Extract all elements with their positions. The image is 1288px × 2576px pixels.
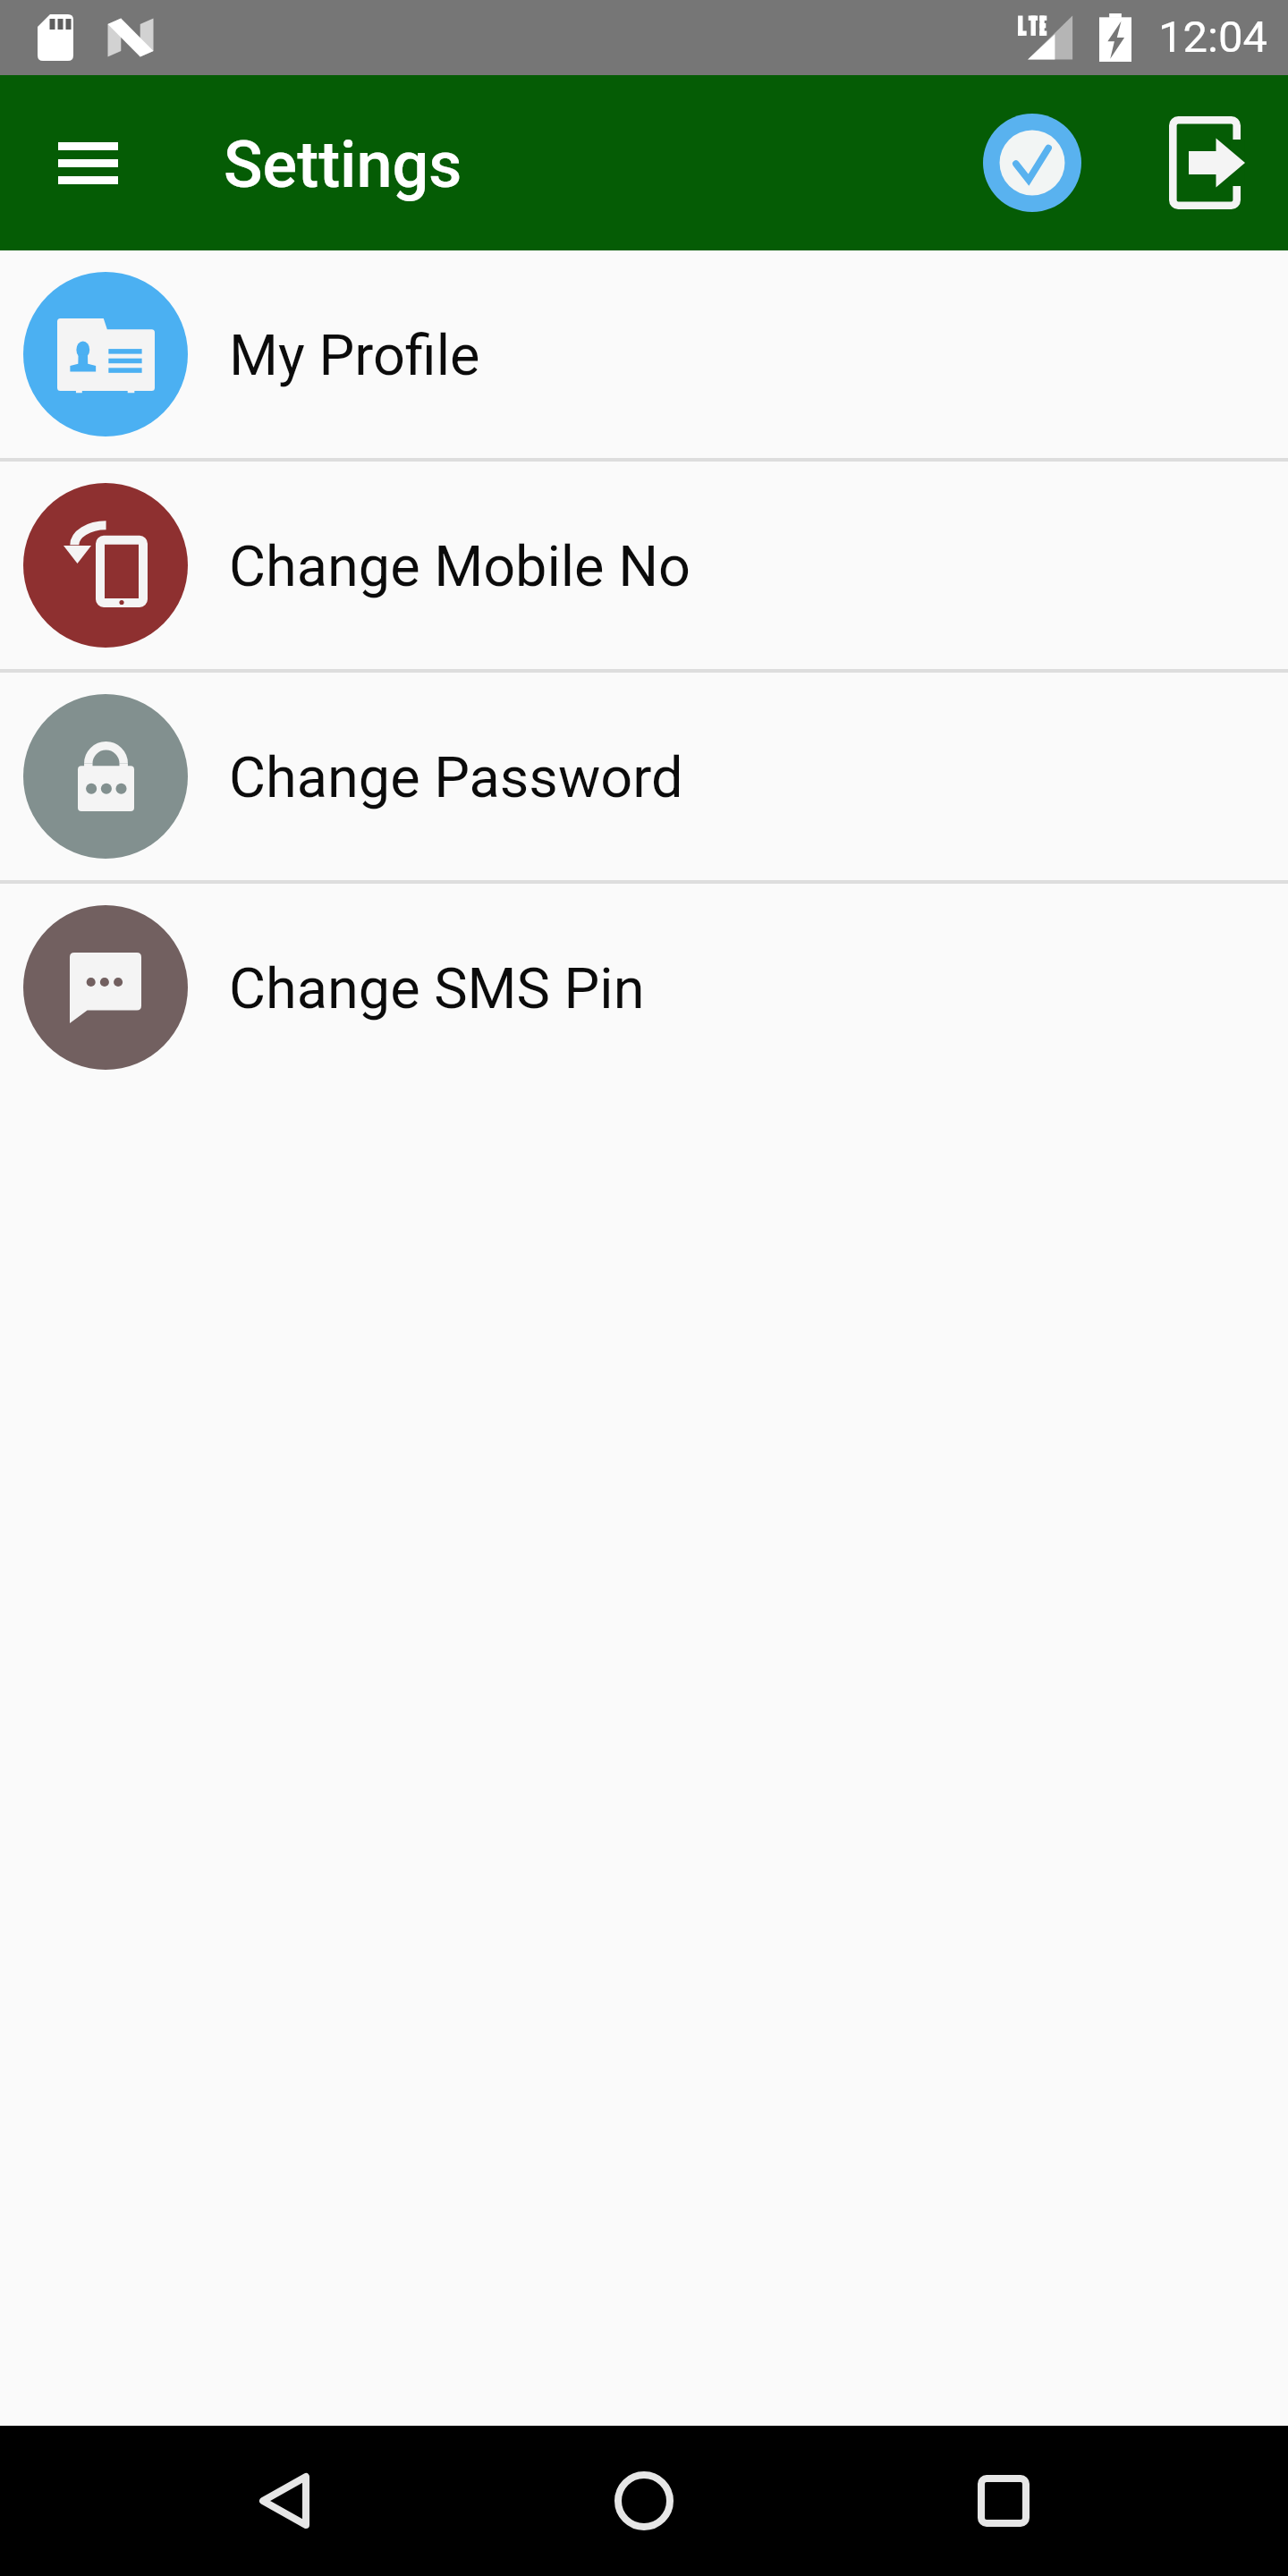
staticText: 12:04: [1158, 12, 1268, 63]
button[interactable]: Open navigation menu: [13, 88, 163, 238]
button[interactable]: Confirm: [965, 96, 1099, 230]
button[interactable]: Home: [569, 2426, 719, 2576]
button[interactable]: Change Password: [0, 673, 1288, 880]
staticText: Settings: [224, 127, 462, 202]
button[interactable]: My Profile: [0, 250, 1288, 458]
staticText: My Profile: [229, 323, 480, 389]
staticText: Change Password: [229, 745, 683, 811]
staticText: Change SMS Pin: [229, 956, 645, 1022]
staticText: Change Mobile No: [229, 534, 691, 600]
button[interactable]: Log out: [1169, 110, 1275, 216]
button[interactable]: Change Mobile No: [0, 462, 1288, 669]
button[interactable]: Back: [209, 2426, 360, 2576]
button[interactable]: Change SMS Pin: [0, 884, 1288, 1091]
button[interactable]: Recent apps: [928, 2426, 1079, 2576]
